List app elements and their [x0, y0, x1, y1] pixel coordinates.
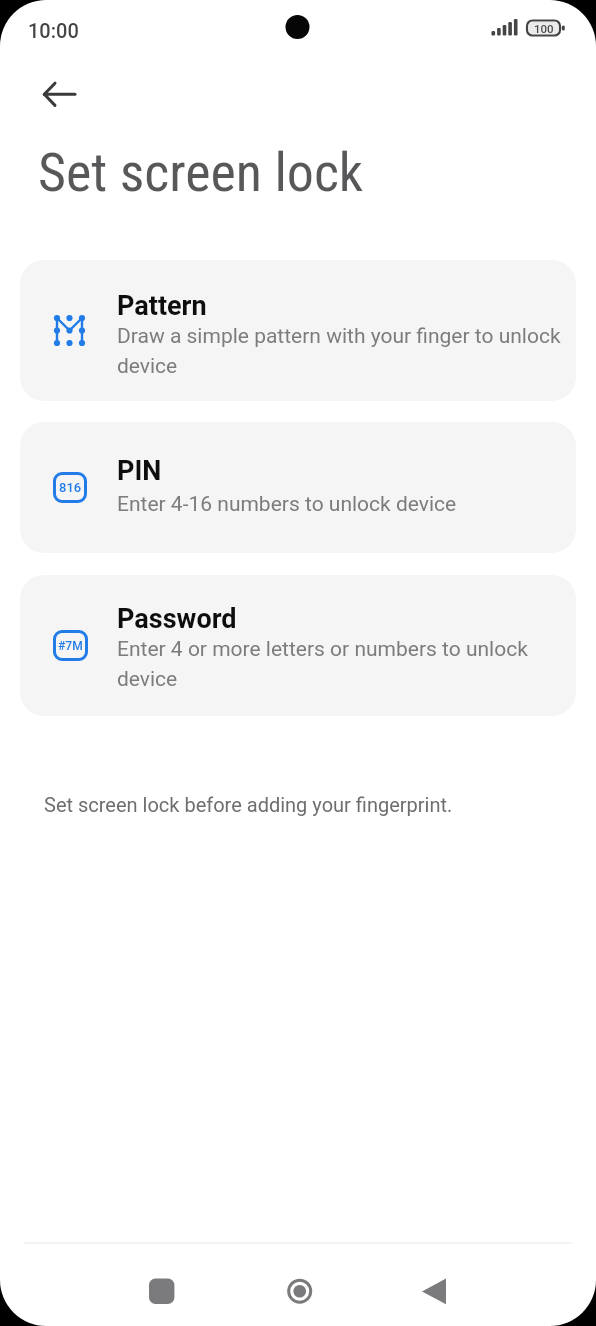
button[interactable] [36, 68, 84, 116]
staticText: Set screen lock [38, 141, 364, 204]
staticText: Enter 4 or more letters or numbers to un… [117, 637, 528, 691]
staticText: Pattern [117, 290, 207, 322]
button[interactable] [402, 1260, 466, 1324]
button[interactable] [268, 1260, 332, 1324]
button[interactable]: Pattern [20, 260, 576, 401]
button[interactable]: #7M [20, 575, 576, 716]
staticText: 816 [59, 480, 82, 495]
staticText: Password [117, 603, 237, 635]
button[interactable] [130, 1260, 194, 1324]
staticText: #7M [58, 639, 83, 653]
staticText: 100 [534, 22, 554, 35]
staticText: Draw a simple pattern with your finger t… [117, 324, 561, 378]
staticText: 10:00 [28, 19, 79, 42]
staticText: Enter 4-16 numbers to unlock device [117, 492, 457, 517]
staticText: PIN [117, 455, 162, 487]
staticText: Set screen lock before adding your finge… [44, 793, 453, 816]
button[interactable]: 816 [20, 422, 576, 553]
